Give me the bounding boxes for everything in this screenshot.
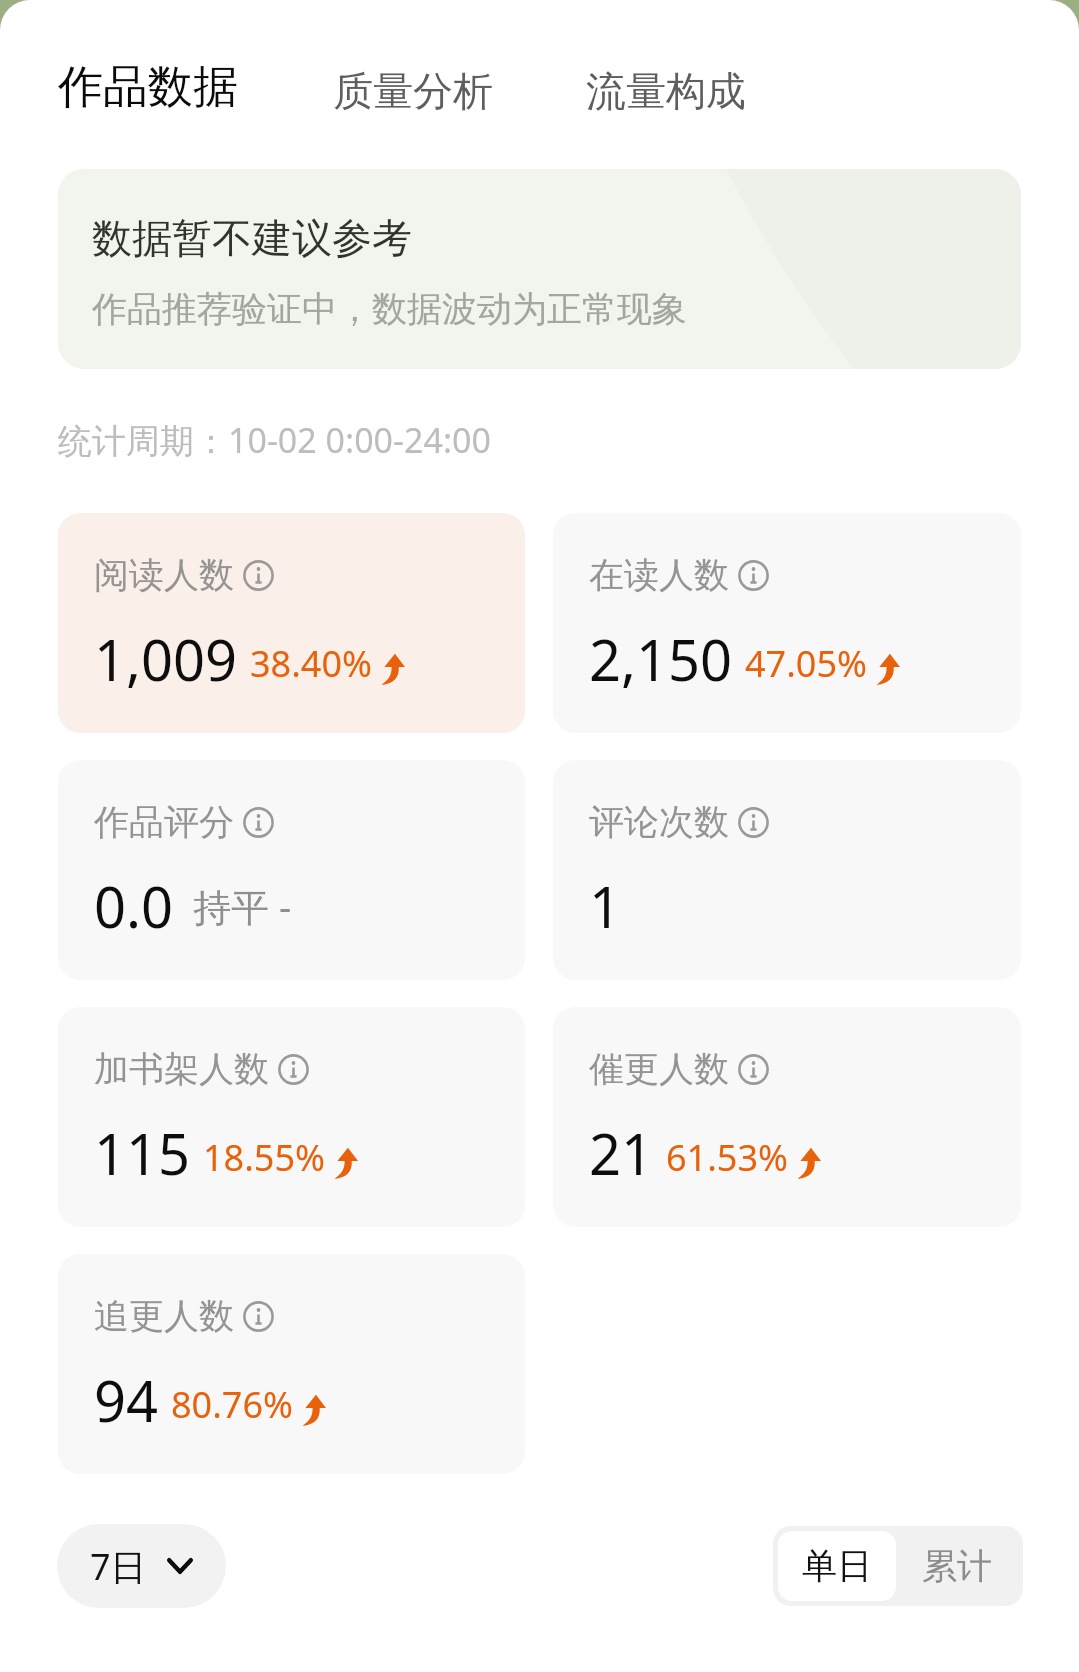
staticText: 统计周期：10-02 0:00-24:00 <box>58 417 491 463</box>
button[interactable]: 评论次数 <box>553 760 1021 980</box>
staticText: 单日 <box>802 1544 872 1588</box>
button[interactable]: 流量构成 <box>586 60 746 122</box>
staticText: 评论次数 <box>589 800 729 844</box>
other: Info <box>738 1054 769 1085</box>
staticText: 质量分析 <box>333 66 493 116</box>
button[interactable]: 7日 <box>57 1524 226 1608</box>
staticText: 80.76% <box>171 1380 293 1429</box>
button[interactable]: 作品数据 <box>58 53 238 122</box>
staticText: 累计 <box>922 1544 992 1588</box>
button[interactable]: 追更人数 <box>58 1254 525 1474</box>
staticText: 1 <box>589 868 622 944</box>
staticText: 作品数据 <box>58 59 238 116</box>
button[interactable]: 作品评分 <box>58 760 525 980</box>
staticText: 1,009 <box>94 621 238 697</box>
staticText: 数据暂不建议参考 <box>92 213 412 263</box>
other: Info <box>243 1301 274 1332</box>
staticText: 21 <box>589 1115 654 1191</box>
staticText: 流量构成 <box>586 66 746 116</box>
other: Info <box>243 560 274 591</box>
staticText: 115 <box>94 1115 191 1191</box>
staticText: 94 <box>94 1362 159 1438</box>
staticText: 加书架人数 <box>94 1047 269 1091</box>
staticText: 61.53% <box>666 1133 788 1182</box>
staticText: 追更人数 <box>94 1294 234 1338</box>
button[interactable]: 单日 <box>778 1531 896 1601</box>
staticText: 2,150 <box>589 621 733 697</box>
staticText: 0.0 <box>94 868 174 944</box>
button[interactable]: 阅读人数 <box>58 513 525 733</box>
staticText: 作品评分 <box>94 800 234 844</box>
other: Info <box>278 1054 309 1085</box>
other: Info <box>243 807 274 838</box>
staticText: 38.40% <box>250 639 372 688</box>
button[interactable]: 在读人数 <box>553 513 1021 733</box>
button[interactable]: 累计 <box>896 1531 1018 1601</box>
button[interactable]: 加书架人数 <box>58 1007 525 1227</box>
staticText: 持平 - <box>193 880 292 932</box>
staticText: 阅读人数 <box>94 553 234 597</box>
staticText: 催更人数 <box>589 1047 729 1091</box>
staticText: 在读人数 <box>589 553 729 597</box>
button[interactable]: 催更人数 <box>553 1007 1021 1227</box>
staticText: 18.55% <box>203 1133 325 1182</box>
staticText: 47.05% <box>745 639 867 688</box>
other: Info <box>738 807 769 838</box>
other: Info <box>738 560 769 591</box>
button[interactable]: 质量分析 <box>333 60 493 122</box>
staticText: 作品推荐验证中，数据波动为正常现象 <box>92 287 687 331</box>
staticText: 7日 <box>90 1542 147 1591</box>
